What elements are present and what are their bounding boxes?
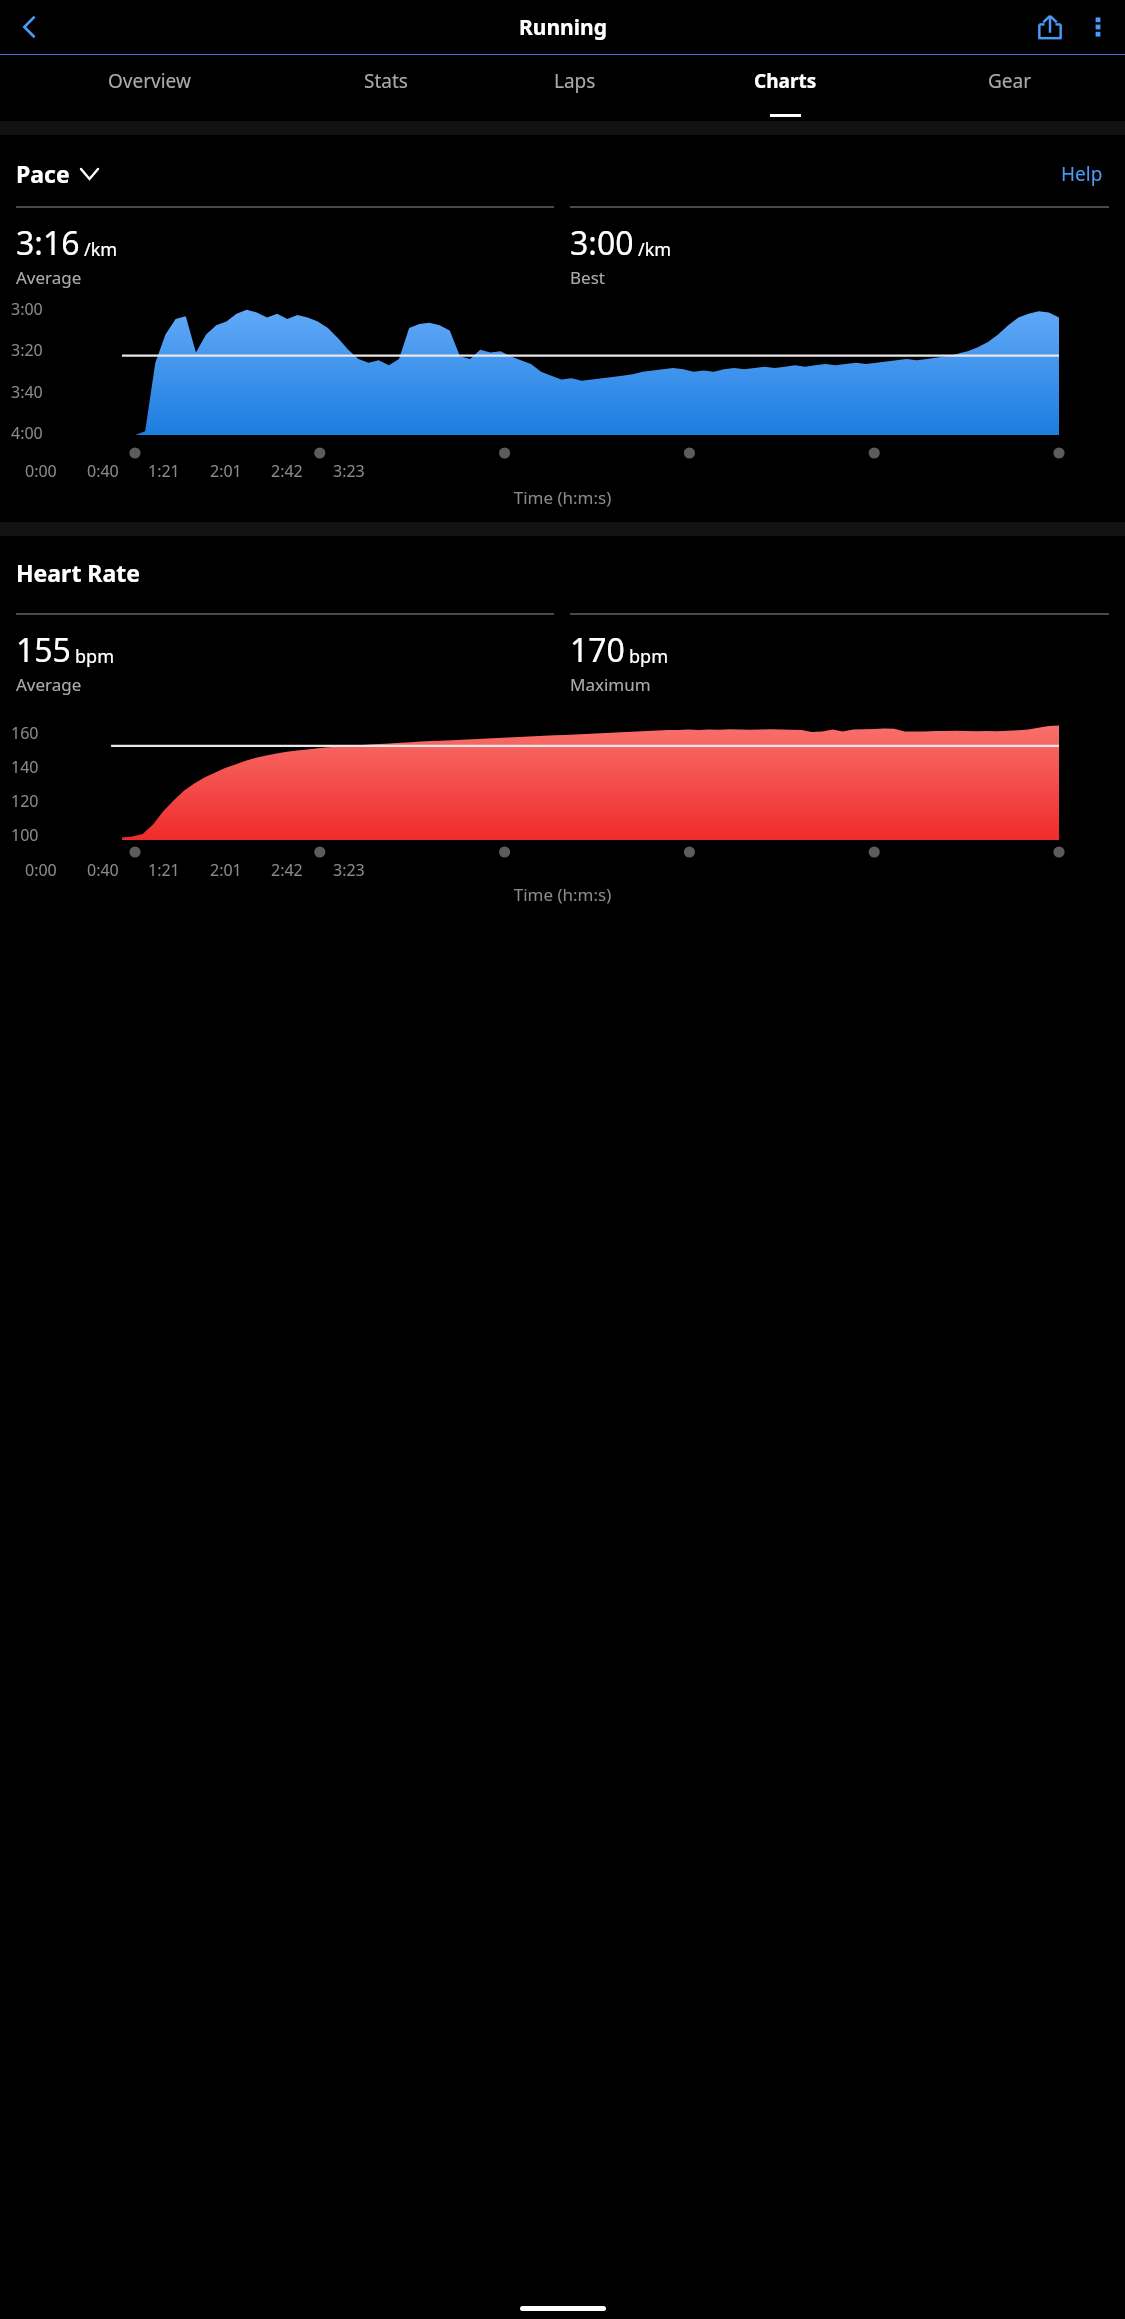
staticText: 160 [11, 722, 39, 744]
staticText: /km [638, 237, 672, 262]
staticText: 155 [16, 628, 71, 672]
staticText: 2:42 [271, 859, 303, 881]
button[interactable]: Pace [11, 154, 103, 193]
staticText: Laps [554, 68, 596, 94]
staticText: bpm [629, 644, 668, 669]
staticText: Best [570, 266, 605, 289]
staticText: Overview [108, 68, 191, 94]
staticText: 1:21 [148, 859, 180, 881]
staticText: 0:40 [87, 859, 119, 881]
staticText: 2:01 [210, 460, 242, 482]
staticText: 140 [11, 756, 39, 778]
staticText: 1:21 [148, 460, 180, 482]
button[interactable]: Back [5, 3, 53, 51]
staticText: Charts [754, 68, 817, 94]
staticText: 0:40 [87, 460, 119, 482]
staticText: bpm [75, 644, 114, 669]
staticText: Average [16, 673, 82, 696]
staticText: 3:23 [333, 460, 365, 482]
staticText: 100 [11, 824, 39, 846]
button[interactable]: Charts [665, 55, 905, 121]
staticText: Heart Rate [16, 557, 140, 588]
staticText: 4:00 [11, 422, 43, 444]
staticText: 3:00 [11, 298, 43, 320]
staticText: 3:23 [333, 859, 365, 881]
staticText: /km [84, 237, 118, 262]
staticText: 0:00 [25, 460, 57, 482]
staticText: Running [519, 13, 607, 42]
staticText: 3:00 [570, 221, 634, 265]
staticText: Help [1061, 161, 1103, 187]
staticText: 2:01 [210, 859, 242, 881]
staticText: 3:40 [11, 381, 43, 403]
staticText: 0:00 [25, 859, 57, 881]
staticText: Time (h:m:s) [0, 883, 1125, 906]
button[interactable]: Laps [484, 55, 665, 121]
staticText: Time (h:m:s) [0, 486, 1125, 509]
staticText: Pace [16, 158, 70, 189]
button[interactable]: Help [1055, 155, 1109, 193]
staticText: Average [16, 266, 82, 289]
staticText: Gear [988, 68, 1032, 94]
staticText: 120 [11, 790, 39, 812]
button[interactable]: Share [1026, 3, 1074, 51]
button[interactable]: More options [1074, 3, 1122, 51]
staticText: 3:20 [11, 339, 43, 361]
button[interactable]: Stats [288, 55, 484, 121]
staticText: 170 [570, 628, 625, 672]
staticText: 2:42 [271, 460, 303, 482]
staticText: 3:16 [16, 221, 80, 265]
staticText: Maximum [570, 673, 651, 696]
staticText: Stats [364, 68, 408, 94]
button[interactable]: Overview [10, 55, 288, 121]
button[interactable]: Gear [905, 55, 1115, 121]
